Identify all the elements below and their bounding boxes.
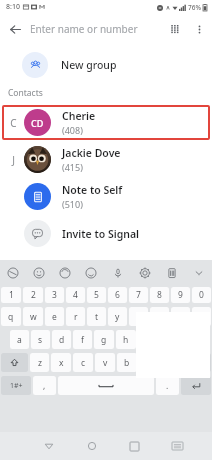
staticText: x	[59, 357, 64, 369]
staticText: b	[124, 357, 130, 369]
button[interactable]: Enter name or number	[30, 14, 162, 44]
button[interactable]: z	[30, 353, 49, 372]
staticText: C	[10, 116, 17, 130]
button[interactable]: 4	[66, 287, 85, 303]
staticText: c	[81, 357, 86, 369]
button[interactable]: 8	[150, 287, 169, 303]
staticText: Note to Self	[62, 183, 123, 197]
button[interactable]: ,	[33, 376, 56, 395]
button[interactable]: a	[10, 330, 29, 349]
button[interactable]: h	[116, 330, 136, 349]
staticText: v	[103, 357, 108, 369]
button[interactable]: 3	[45, 287, 64, 303]
button[interactable]: 1#+	[1, 376, 31, 395]
staticText: 76%	[188, 3, 201, 12]
button[interactable]: Switch keyboard	[156, 432, 199, 460]
button[interactable]: Collapse	[185, 260, 212, 285]
button[interactable]: q	[1, 307, 21, 326]
button[interactable]: x	[51, 353, 71, 372]
button[interactable]: b	[117, 353, 137, 372]
button[interactable]: C	[2, 105, 210, 140]
staticText: 0	[199, 289, 204, 301]
staticText: .	[166, 380, 169, 392]
button[interactable]: r	[66, 307, 85, 326]
staticText: Cherie	[62, 109, 96, 123]
staticText: 7	[136, 289, 141, 301]
button[interactable]	[1, 353, 28, 372]
button[interactable]: 6	[108, 287, 127, 303]
staticText: g	[101, 334, 107, 346]
button[interactable]: J	[2, 142, 210, 177]
button[interactable]	[183, 353, 211, 372]
button[interactable]: 5	[87, 287, 106, 303]
staticText: 5	[94, 289, 99, 301]
button[interactable]: w	[23, 307, 43, 326]
staticText: 3	[52, 289, 57, 301]
button[interactable]: More options	[188, 18, 210, 40]
button[interactable]: s	[31, 330, 50, 349]
button[interactable]	[181, 376, 211, 395]
button[interactable]: Back	[0, 14, 30, 44]
staticText: (415)	[62, 161, 83, 173]
button[interactable]: Translate	[0, 260, 26, 285]
button[interactable]: Dial pad	[162, 16, 188, 42]
staticText: s	[38, 334, 43, 346]
button[interactable]: f	[73, 330, 92, 349]
button[interactable]: t	[87, 307, 106, 326]
button[interactable]: Clipboard	[158, 260, 185, 285]
button[interactable]	[58, 376, 154, 395]
staticText: Contacts	[8, 87, 43, 99]
button[interactable]: Invite to Signal	[2, 216, 210, 251]
staticText: 9	[178, 289, 183, 301]
button[interactable]: Settings	[131, 260, 158, 285]
button[interactable]: 7	[129, 287, 148, 303]
staticText: ,	[43, 380, 46, 392]
button[interactable]: v	[95, 353, 115, 372]
button[interactable]: Recent apps	[113, 432, 156, 460]
button[interactable]: y	[108, 307, 127, 326]
button[interactable]: 9	[171, 287, 190, 303]
staticText: z	[38, 357, 42, 369]
button[interactable]: New group	[0, 48, 212, 82]
button[interactable]: 2	[23, 287, 43, 303]
button[interactable]: Home	[70, 432, 113, 460]
button[interactable]: 1	[1, 287, 21, 303]
button[interactable]: Back	[27, 432, 70, 460]
button[interactable]: Note to Self	[2, 179, 210, 214]
staticText: (510)	[62, 198, 83, 210]
button[interactable]: Voice input	[104, 260, 131, 285]
staticText: Invite to Signal	[62, 227, 140, 241]
staticText: r	[74, 311, 78, 323]
staticText: 6	[115, 289, 120, 301]
button[interactable]: d	[52, 330, 71, 349]
button[interactable]: GIF	[52, 260, 78, 285]
button[interactable]: Emoji	[26, 260, 52, 285]
staticText: q	[8, 311, 14, 323]
button[interactable]: e	[45, 307, 64, 326]
staticText: 1	[9, 289, 14, 301]
button[interactable]: c	[73, 353, 93, 372]
button[interactable]: g	[94, 330, 114, 349]
staticText: h	[123, 334, 129, 346]
staticText: d	[59, 334, 65, 346]
button[interactable]: 0	[192, 287, 211, 303]
button[interactable]: Sticker	[78, 260, 104, 285]
button[interactable]: .	[156, 376, 179, 395]
